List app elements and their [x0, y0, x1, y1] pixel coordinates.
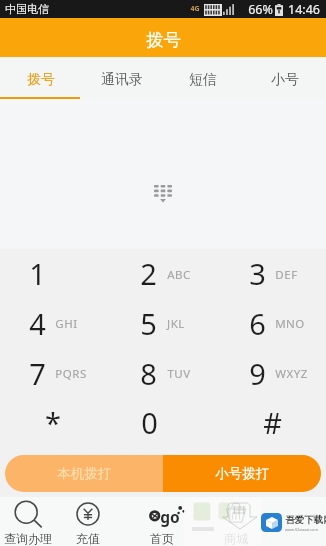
staticText: GHI: [55, 316, 78, 332]
staticText: 0: [141, 403, 158, 442]
staticText: 中国电信: [5, 2, 49, 16]
button[interactable]: 拨号: [0, 57, 81, 100]
button[interactable]: 小号拨打: [163, 455, 321, 492]
staticText: 2: [140, 254, 157, 293]
staticText: 充值: [76, 531, 100, 546]
staticText: WXYZ: [275, 366, 308, 382]
button[interactable]: 2: [109, 249, 218, 298]
staticText: 7: [29, 354, 46, 393]
button[interactable]: 8: [109, 348, 218, 398]
staticText: *: [45, 403, 61, 442]
staticText: 首页: [150, 531, 174, 546]
staticText: 小号: [271, 71, 299, 89]
button[interactable]: 查询办理: [0, 497, 60, 546]
button[interactable]: 小号: [244, 57, 326, 100]
staticText: 小号拨打: [215, 465, 269, 482]
staticText: #: [263, 403, 282, 442]
staticText: 6: [249, 304, 266, 343]
staticText: 66%: [248, 1, 273, 18]
staticText: DEF: [275, 267, 298, 283]
button[interactable]: 5: [109, 298, 218, 348]
staticText: 本机拨打: [57, 465, 111, 482]
staticText: 8: [140, 354, 157, 393]
staticText: 商城: [224, 531, 248, 546]
button[interactable]: 本机拨打: [5, 455, 163, 492]
button[interactable]: Show keypad: [147, 185, 179, 209]
button[interactable]: 0: [109, 398, 218, 448]
staticText: JKL: [167, 316, 185, 332]
staticText: 5: [140, 304, 157, 343]
staticText: 通讯录: [101, 71, 143, 89]
button[interactable]: #: [217, 398, 326, 448]
staticText: TUV: [167, 366, 191, 382]
button[interactable]: 9: [217, 348, 326, 398]
staticText: 短信: [189, 71, 217, 89]
button[interactable]: 通讯录: [81, 57, 162, 100]
button[interactable]: go: [130, 497, 194, 546]
staticText: ABC: [167, 267, 191, 283]
button[interactable]: 7: [0, 348, 109, 398]
staticText: 9: [249, 354, 266, 393]
staticText: 查询办理: [4, 531, 52, 546]
staticText: 3: [249, 254, 266, 293]
staticText: 拨号: [27, 71, 55, 89]
button[interactable]: *: [0, 398, 109, 448]
button[interactable]: 6: [217, 298, 326, 348]
staticText: go: [160, 506, 180, 527]
button[interactable]: 3: [217, 249, 326, 298]
staticText: www.52xiazai.com: [285, 527, 318, 532]
staticText: 1: [29, 254, 46, 293]
button[interactable]: 1: [0, 249, 109, 298]
staticText: 吾爱下载网: [285, 514, 326, 526]
staticText: 拨号: [146, 29, 181, 51]
button[interactable]: 短信: [162, 57, 244, 100]
button[interactable]: 4: [0, 298, 109, 348]
button[interactable]: 充值: [56, 497, 120, 546]
staticText: 4: [29, 304, 46, 343]
staticText: MNO: [275, 316, 305, 332]
staticText: PQRS: [55, 366, 87, 382]
staticText: 4G: [190, 4, 200, 14]
button[interactable]: 商城: [204, 497, 268, 546]
staticText: 14:46: [288, 1, 320, 18]
